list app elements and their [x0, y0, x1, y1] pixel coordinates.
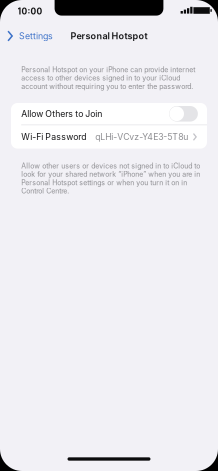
- staticText: Wi-Fi Password: [21, 132, 86, 142]
- button[interactable]: Settings: [0, 23, 63, 48]
- staticText: Personal Hotspot on your iPhone can prov…: [21, 65, 195, 91]
- staticText: 10:00: [17, 6, 42, 16]
- button[interactable]: Allow Others to Join: [168, 105, 200, 123]
- button[interactable]: Wi-Fi Password: [11, 125, 207, 149]
- staticText: Allow Others to Join: [21, 109, 102, 119]
- staticText: Allow other users or devices not signed …: [21, 162, 200, 195]
- staticText: qLHi-VCvz-Y4E3-5T8u: [95, 132, 188, 142]
- staticText: Settings: [19, 31, 53, 41]
- staticText: Personal Hotspot: [70, 30, 147, 41]
